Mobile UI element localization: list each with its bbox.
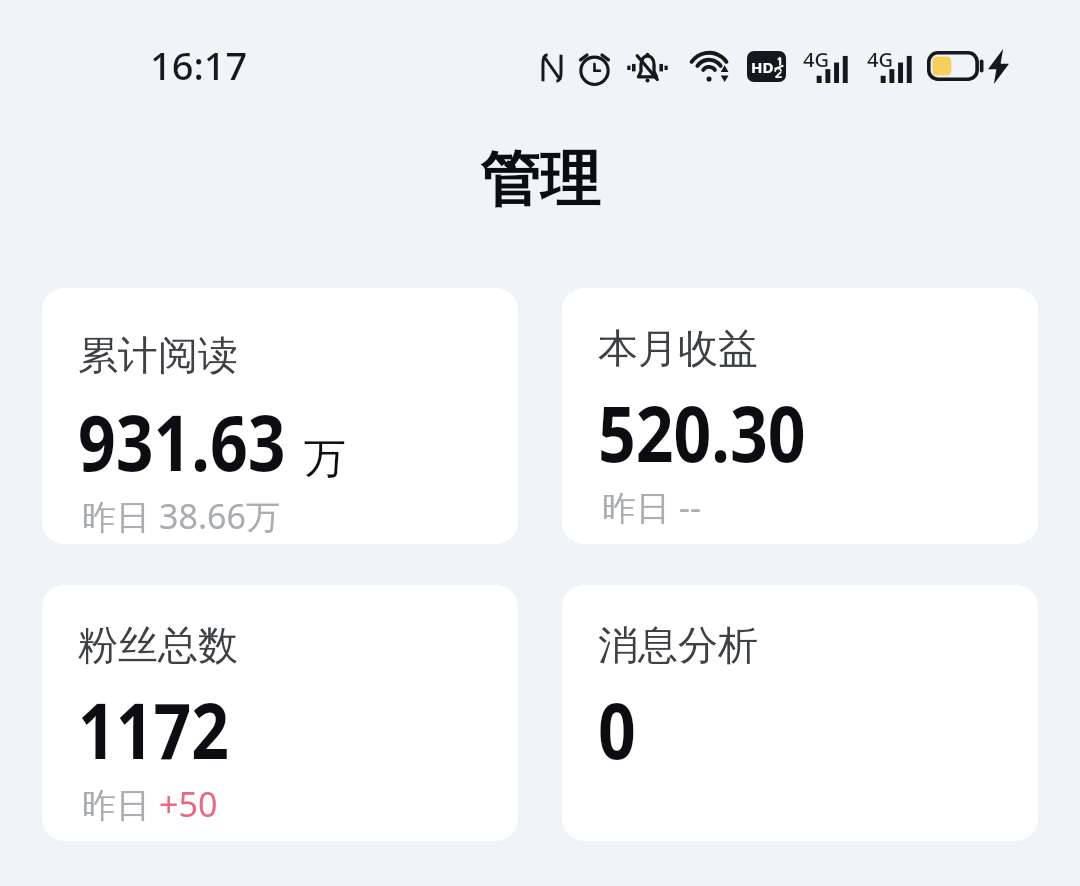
staticText: 本月收益 <box>598 323 758 373</box>
staticText: 累计阅读 <box>78 330 238 380</box>
staticText: 38.66万 <box>159 493 280 539</box>
staticText: +50 <box>159 781 218 827</box>
staticText: 万 <box>304 433 346 486</box>
staticText: 4G <box>803 46 829 73</box>
staticText: 管理 <box>480 142 600 218</box>
button[interactable]: 消息分析 <box>562 585 1038 841</box>
staticText: HD <box>751 57 774 77</box>
staticText: 1172 <box>78 677 230 782</box>
staticText: 昨日 <box>82 781 159 827</box>
staticText: 粉丝总数 <box>78 620 238 670</box>
staticText: 昨日 <box>82 493 159 539</box>
button[interactable]: 粉丝总数 <box>42 585 518 841</box>
button[interactable]: 本月收益 <box>562 288 1038 544</box>
staticText: -- <box>679 484 701 530</box>
staticText: 4G <box>867 46 893 73</box>
staticText: 昨日 <box>602 484 679 530</box>
button[interactable]: 累计阅读 <box>42 288 518 544</box>
staticText: 931.63 <box>78 389 286 494</box>
staticText: 0 <box>598 677 637 782</box>
staticText: 520.30 <box>598 380 806 485</box>
staticText: 消息分析 <box>598 620 758 670</box>
staticText: 16:17 <box>150 39 248 91</box>
